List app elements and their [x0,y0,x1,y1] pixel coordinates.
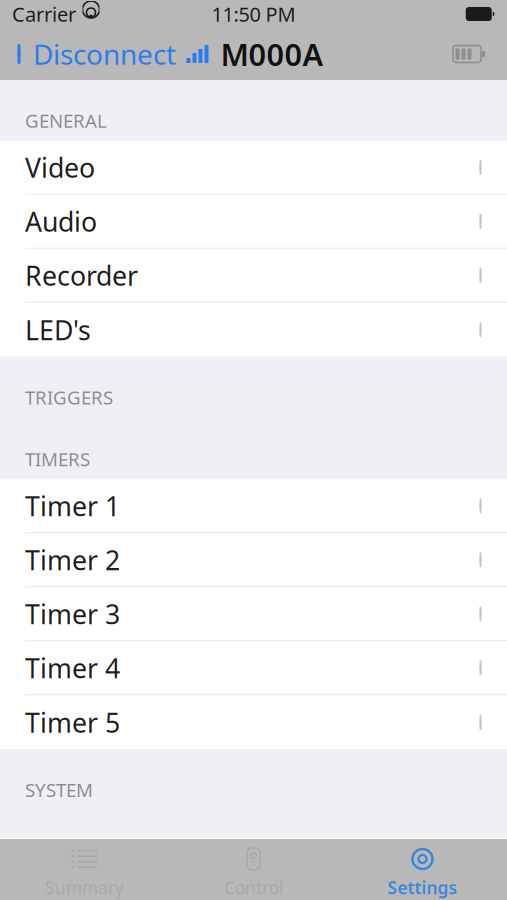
staticText: Timer 2 [25,542,120,578]
staticText: Recorder [25,258,138,293]
button[interactable]: Timer 4 [0,641,507,695]
button[interactable]: Timer 3 [0,587,507,641]
button[interactable]: Disconnect [0,29,186,79]
button[interactable]: Timer 1 [0,479,507,533]
staticText: Timer 4 [25,650,120,686]
staticText: TIMERS [25,447,90,471]
staticText: TRIGGERS [25,385,113,410]
button[interactable]: LED's [0,303,507,357]
button[interactable]: Timer 2 [0,533,507,587]
staticText: Control [224,876,283,899]
button[interactable]: Audio [0,195,507,249]
staticText: Disconnect [33,35,176,73]
staticText: GENERAL [25,108,107,133]
staticText: Timer 3 [25,596,120,632]
staticText: Timer 5 [25,705,120,740]
button[interactable]: Recorder [0,249,507,303]
staticText: Video [25,150,95,185]
staticText: M000A [220,34,323,74]
button[interactable]: Timer 5 [0,695,507,749]
staticText: Settings [387,876,457,899]
staticText: 11:50 PM [211,1,295,27]
staticText: SYSTEM [25,777,93,802]
staticText: Timer 1 [25,488,120,524]
button[interactable]: Settings [338,840,507,899]
staticText: Audio [25,204,97,239]
staticText: Summary [45,876,124,899]
button[interactable]: Battery [447,34,491,74]
staticText: LED's [25,312,91,347]
staticText: Carrier [12,1,76,27]
button[interactable]: Video [0,141,507,195]
